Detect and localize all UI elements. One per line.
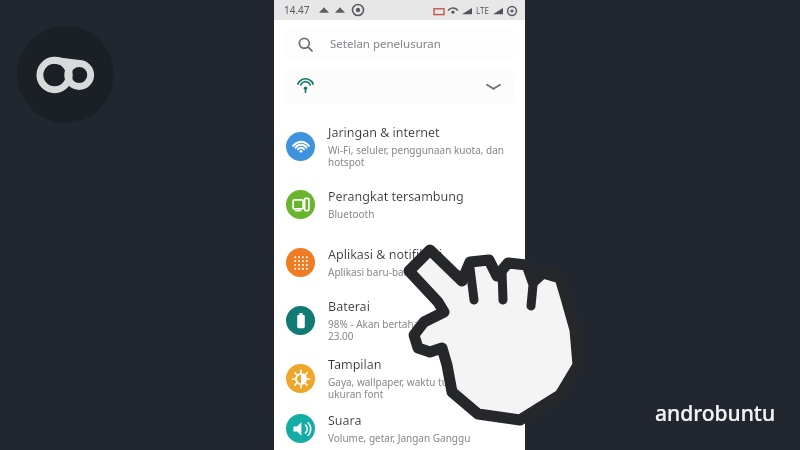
button[interactable]: Tampilan xyxy=(274,349,525,407)
staticText: Volume, getar, Jangan Ganggu xyxy=(328,431,471,445)
staticText: Wi-Fi, seluler, penggunaan kuota, dan ho… xyxy=(328,143,515,169)
staticText: LTE xyxy=(476,5,489,16)
staticText: Tampilan xyxy=(328,356,382,373)
staticText: Bluetooth xyxy=(328,207,375,221)
button[interactable]: Setelan penelusuran xyxy=(285,27,514,61)
staticText: Aplikasi baru-baru ini, aplikasi default xyxy=(328,265,505,279)
other: Expand xyxy=(487,80,500,93)
button[interactable]: Expand xyxy=(285,69,514,104)
button[interactable]: Suara xyxy=(274,407,525,450)
staticText: Perangkat tersambung xyxy=(328,188,464,205)
staticText: 98% - Akan bertahan kira-kira sampai 23.… xyxy=(328,317,515,343)
button[interactable]: Perangkat tersambung xyxy=(274,175,525,233)
staticText: 14.47 xyxy=(284,3,310,17)
button[interactable]: Jaringan & internet xyxy=(274,117,525,175)
staticText: Jaringan & internet xyxy=(328,124,440,141)
button[interactable]: Androbuntu logo xyxy=(17,26,114,123)
staticText: Gaya, wallpaper, waktu tunggu layar, uku… xyxy=(328,375,515,401)
button[interactable]: Aplikasi & notifikasi xyxy=(274,233,525,291)
staticText: Suara xyxy=(328,412,362,429)
staticText: Baterai xyxy=(328,298,370,315)
staticText: androbuntu xyxy=(655,399,776,428)
staticText: Aplikasi & notifikasi xyxy=(328,246,443,263)
staticText: Setelan penelusuran xyxy=(330,36,441,52)
button[interactable]: Baterai xyxy=(274,291,525,349)
